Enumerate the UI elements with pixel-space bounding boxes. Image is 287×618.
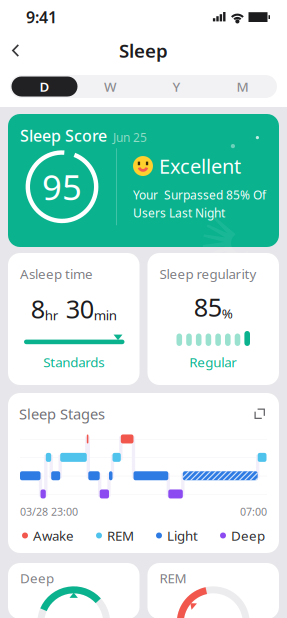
staticText: Regular	[189, 353, 237, 371]
button[interactable]: M	[209, 76, 275, 96]
staticText: 9:41	[26, 6, 57, 28]
staticText: REM	[107, 527, 134, 544]
staticText: Users Last Night	[133, 205, 225, 221]
staticText: Sleep	[119, 38, 168, 63]
staticText: Sleep regularity	[159, 265, 256, 283]
staticText: REM	[159, 569, 186, 587]
staticText: 07:00	[240, 504, 267, 519]
button[interactable]: Back	[5, 36, 26, 65]
staticText: D	[39, 78, 49, 95]
staticText: Standards	[43, 353, 104, 371]
staticText: Your Surpassed 85% Of	[133, 187, 266, 203]
staticText: 95	[42, 164, 82, 210]
staticText: Deep	[231, 527, 265, 544]
button[interactable]: W	[77, 76, 143, 96]
staticText: min	[94, 306, 117, 324]
staticText: Deep	[20, 569, 54, 587]
staticText: Y	[172, 78, 180, 95]
button[interactable]: D	[11, 76, 77, 96]
button[interactable]: Y	[143, 76, 209, 96]
staticText: 03/28 23:00	[20, 504, 78, 519]
staticText: Sleep Score	[20, 125, 107, 146]
staticText: 30	[59, 292, 94, 325]
staticText: Jun 25	[113, 129, 147, 145]
staticText: %	[222, 304, 233, 322]
staticText: 85	[194, 290, 222, 324]
staticText: Light	[167, 527, 198, 544]
staticText: Awake	[33, 527, 74, 544]
staticText: M	[236, 78, 248, 95]
staticText: Sleep Stages	[19, 404, 105, 423]
staticText: hr	[45, 306, 59, 324]
staticText: 8	[31, 292, 45, 325]
staticText: Asleep time	[20, 265, 93, 283]
staticText: W	[104, 78, 117, 95]
staticText: Excellent	[159, 153, 241, 179]
button[interactable]: Expand chart	[251, 405, 268, 422]
